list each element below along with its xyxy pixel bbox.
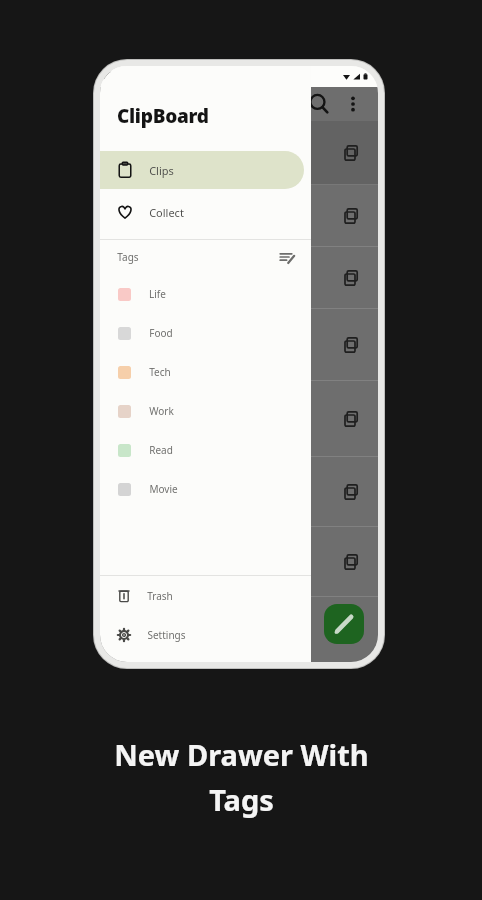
staticText: Tech bbox=[149, 365, 171, 379]
staticText: Work bbox=[149, 404, 174, 418]
button[interactable]: Copy bbox=[342, 409, 362, 429]
staticText: Movie bbox=[149, 482, 178, 496]
button[interactable]: Copy bbox=[342, 482, 362, 502]
button[interactable]: Edit tags bbox=[277, 247, 297, 267]
button[interactable]: Tech bbox=[100, 352, 311, 391]
staticText: Tags bbox=[209, 780, 274, 819]
button[interactable]: Copy bbox=[100, 527, 378, 597]
staticText: Tags bbox=[117, 250, 139, 264]
staticText: Clips bbox=[149, 163, 174, 178]
staticText: Food bbox=[149, 326, 173, 340]
button[interactable]: Trash bbox=[100, 576, 311, 615]
staticText: Read bbox=[149, 443, 173, 457]
button[interactable]: Settings bbox=[100, 615, 311, 654]
button[interactable]: Copy bbox=[342, 206, 362, 226]
button[interactable]: Copy bbox=[100, 185, 378, 247]
button[interactable]: Life bbox=[100, 274, 311, 313]
button[interactable]: Clips bbox=[100, 151, 304, 189]
button[interactable]: Copy bbox=[100, 247, 378, 309]
button[interactable]: Copy bbox=[342, 268, 362, 288]
button[interactable]: Copy bbox=[100, 121, 378, 185]
staticText: Life bbox=[149, 287, 166, 301]
staticText: Settings bbox=[147, 628, 186, 642]
button[interactable]: Copy bbox=[342, 335, 362, 355]
button[interactable]: Food bbox=[100, 313, 311, 352]
button[interactable]: More options bbox=[342, 93, 364, 115]
button[interactable]: Read bbox=[100, 430, 311, 469]
staticText: Trash bbox=[147, 589, 173, 603]
staticText: Collect bbox=[149, 205, 184, 220]
button[interactable]: Work bbox=[100, 391, 311, 430]
staticText: New Drawer With bbox=[114, 735, 369, 774]
button[interactable]: Copy bbox=[100, 309, 378, 381]
button[interactable]: Collect bbox=[100, 189, 311, 235]
button[interactable]: New clip bbox=[324, 604, 364, 644]
button[interactable]: Copy bbox=[342, 552, 362, 572]
staticText: ClipBoard bbox=[117, 103, 209, 129]
button[interactable]: Copy bbox=[100, 457, 378, 527]
button[interactable]: Movie bbox=[100, 469, 311, 508]
button[interactable]: Copy bbox=[100, 381, 378, 457]
button[interactable]: Search bbox=[306, 91, 332, 117]
button[interactable]: Copy bbox=[342, 143, 362, 163]
